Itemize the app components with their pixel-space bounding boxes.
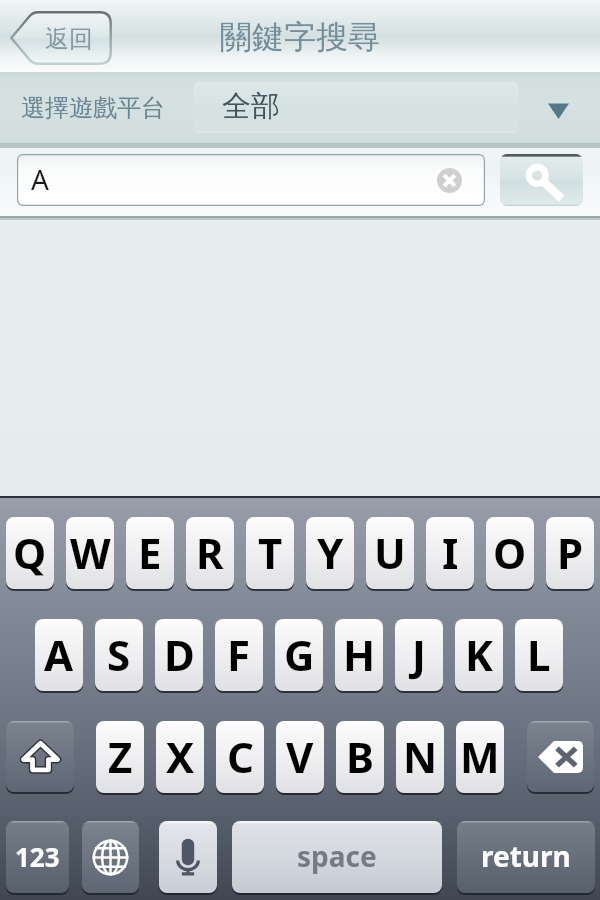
button[interactable]: W [66, 517, 114, 589]
button[interactable]: M [456, 721, 504, 793]
button[interactable]: Backspace [527, 721, 594, 792]
staticText: P [557, 524, 584, 581]
staticText: K [465, 626, 493, 683]
button[interactable]: F [215, 619, 263, 691]
button[interactable]: X [156, 721, 204, 793]
staticText: space [297, 837, 377, 875]
staticText: C [227, 728, 254, 785]
staticText: A [44, 626, 74, 683]
staticText: N [403, 728, 438, 785]
button[interactable]: return [457, 821, 595, 893]
staticText: G [284, 626, 315, 683]
staticText: Y [317, 524, 344, 581]
button[interactable]: V [276, 721, 324, 793]
button[interactable]: J [395, 619, 443, 691]
button[interactable]: 全部 [193, 82, 519, 133]
staticText: X [166, 728, 195, 785]
button[interactable]: R [186, 517, 234, 589]
staticText: B [346, 728, 374, 785]
staticText: E [138, 524, 162, 581]
staticText: return [481, 837, 571, 875]
button[interactable]: 返回 [10, 11, 112, 65]
staticText: I [442, 524, 459, 581]
button[interactable]: space [232, 821, 442, 893]
button[interactable]: Dictation [159, 821, 217, 893]
staticText: 關鍵字搜尋 [220, 17, 380, 57]
staticText: 全部 [222, 88, 280, 125]
staticText: 123 [15, 839, 60, 874]
staticText: L [527, 626, 551, 683]
staticText: J [412, 626, 426, 683]
button[interactable]: K [455, 619, 503, 691]
staticText: R [196, 524, 224, 581]
button[interactable]: C [216, 721, 264, 793]
staticText: A [31, 160, 49, 198]
staticText: H [343, 626, 376, 683]
staticText: V [286, 728, 314, 785]
button[interactable]: O [486, 517, 534, 589]
button[interactable]: G [275, 619, 323, 691]
button[interactable]: Clear text [437, 168, 462, 193]
staticText: O [493, 524, 527, 581]
staticText: S [107, 626, 131, 683]
button[interactable]: B [336, 721, 384, 793]
button[interactable]: A [35, 619, 83, 691]
button[interactable]: L [515, 619, 563, 691]
button[interactable]: A [17, 154, 485, 206]
button[interactable]: N [396, 721, 444, 793]
button[interactable]: D [155, 619, 203, 691]
staticText: F [227, 626, 251, 683]
staticText: D [164, 626, 195, 683]
button[interactable]: E [126, 517, 174, 589]
staticText: Q [13, 524, 47, 581]
staticText: Z [108, 728, 133, 785]
button[interactable]: Y [306, 517, 354, 589]
button[interactable]: Expand platform list [548, 102, 569, 119]
button[interactable]: Shift [6, 721, 74, 792]
button[interactable]: S [95, 619, 143, 691]
staticText: U [374, 524, 406, 581]
button[interactable]: I [426, 517, 474, 589]
staticText: M [460, 728, 500, 785]
button[interactable]: 123 [6, 821, 69, 893]
button[interactable]: Z [96, 721, 144, 793]
button[interactable]: Next keyboard [82, 821, 139, 893]
staticText: T [258, 524, 283, 581]
staticText: 返回 [45, 24, 93, 54]
button[interactable]: T [246, 517, 294, 589]
button[interactable]: P [546, 517, 594, 589]
button[interactable]: H [335, 619, 383, 691]
staticText: 選擇遊戲平台 [21, 93, 165, 123]
button[interactable]: Q [6, 517, 54, 589]
button[interactable]: Search [500, 154, 583, 206]
staticText: W [70, 524, 111, 581]
button[interactable]: U [366, 517, 414, 589]
